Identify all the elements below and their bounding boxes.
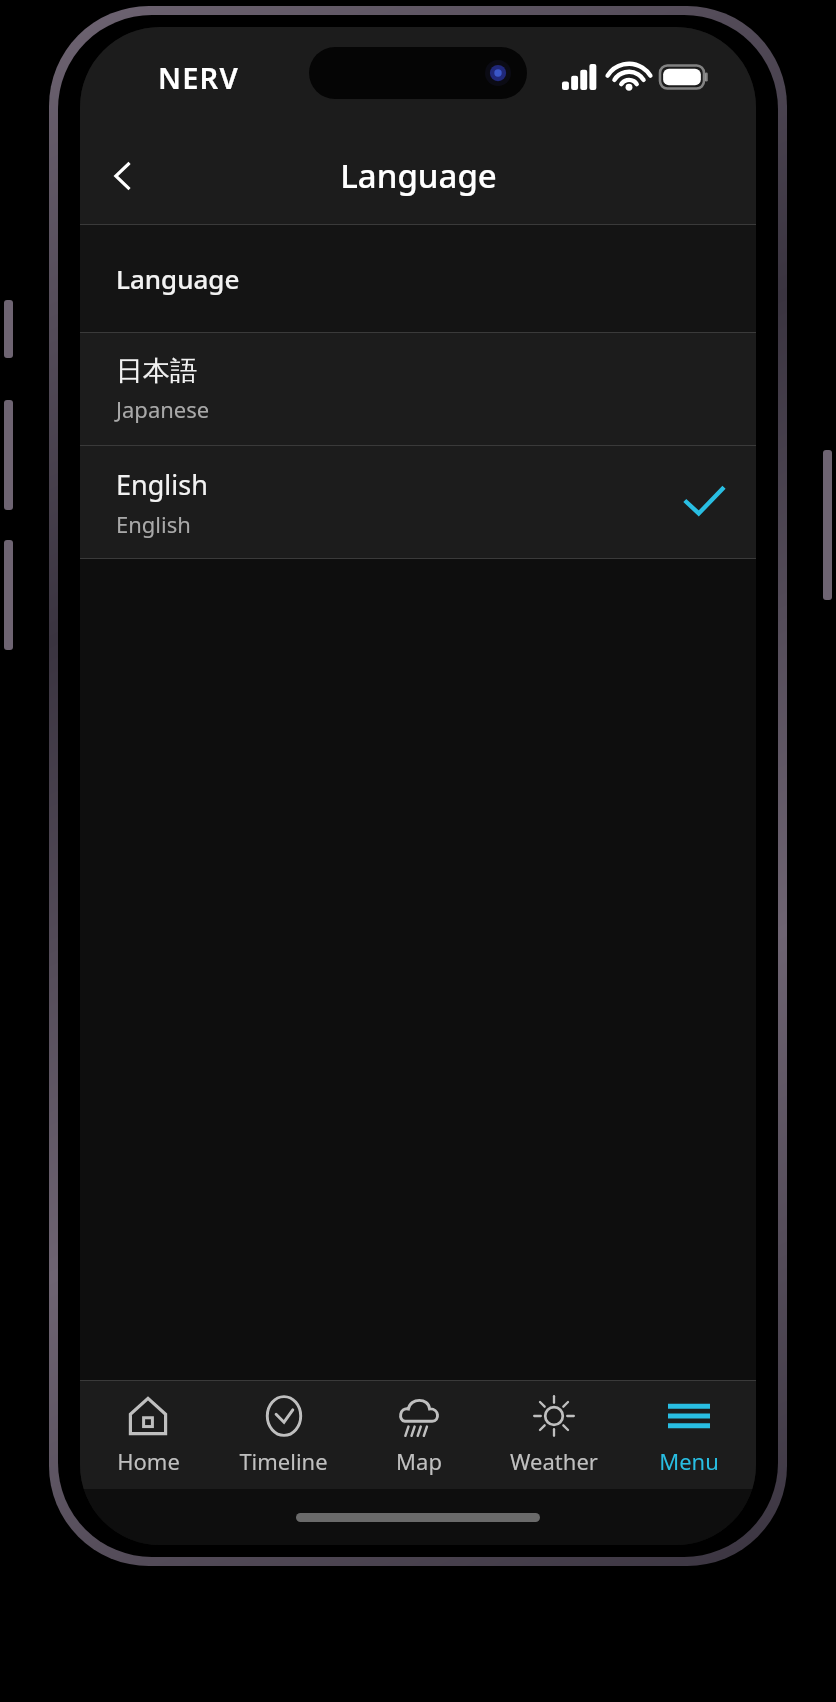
staticText: Weather — [510, 1446, 598, 1476]
staticText: Menu — [659, 1446, 719, 1476]
staticText: 日本語 — [116, 354, 197, 388]
staticText: NERV — [158, 58, 239, 97]
button[interactable]: Home — [80, 1381, 216, 1489]
staticText: Language — [340, 153, 497, 198]
button[interactable]: Timeline — [216, 1381, 351, 1489]
button[interactable]: Back — [80, 133, 166, 219]
button[interactable]: Map — [351, 1381, 486, 1489]
staticText: English — [116, 509, 191, 539]
staticText: Map — [396, 1446, 442, 1476]
button[interactable]: English — [80, 446, 756, 558]
staticText: Timeline — [239, 1446, 328, 1476]
staticText: Home — [117, 1446, 180, 1476]
button[interactable]: Menu — [621, 1381, 756, 1489]
staticText: Japanese — [116, 394, 210, 424]
staticText: English — [116, 466, 208, 503]
button[interactable]: 日本語 — [80, 333, 756, 445]
staticText: Language — [116, 261, 240, 296]
button[interactable]: Weather — [486, 1381, 621, 1489]
